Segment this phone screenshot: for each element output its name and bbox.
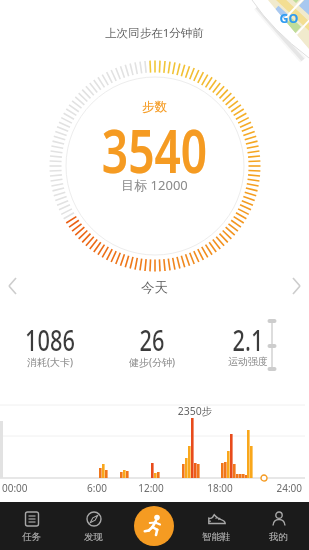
button[interactable]: GO — [240, 0, 309, 66]
staticText: 6:00 — [77, 481, 117, 495]
staticText: 智能鞋 — [202, 531, 231, 543]
staticText: 上次同步在1分钟前 — [0, 25, 309, 41]
button[interactable]: 智能鞋 — [185, 502, 247, 550]
button[interactable]: 任务 — [0, 502, 62, 550]
button[interactable] — [269, 270, 309, 302]
staticText: 目标 12000 — [0, 176, 309, 194]
staticText: 消耗(大卡) — [10, 355, 90, 369]
button[interactable]: 发现 — [62, 502, 124, 550]
staticText: 24:00 — [262, 481, 302, 495]
button[interactable]: 我的 — [247, 502, 309, 550]
staticText: 健步(分钟) — [112, 355, 192, 369]
staticText: 步数 — [0, 99, 309, 115]
staticText: 18:00 — [200, 481, 240, 495]
staticText: 发现 — [84, 531, 103, 543]
staticText: 任务 — [22, 531, 41, 543]
staticText: 00:00 — [2, 481, 42, 495]
staticText: 26 — [122, 320, 182, 359]
staticText: 2.1 — [218, 320, 278, 359]
button[interactable] — [134, 506, 174, 546]
staticText: 12:00 — [131, 481, 171, 495]
staticText: 运动强度 — [208, 355, 288, 368]
staticText: GO — [274, 10, 304, 27]
staticText: 今天 — [0, 279, 309, 296]
button[interactable] — [124, 502, 186, 550]
staticText: 2350步 — [155, 404, 235, 418]
staticText: 我的 — [269, 531, 288, 543]
staticText: 1086 — [20, 320, 80, 359]
button[interactable] — [0, 270, 40, 302]
staticText: 3540 — [34, 110, 275, 190]
